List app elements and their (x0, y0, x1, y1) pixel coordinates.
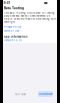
staticText: Not Now (15, 93, 26, 96)
staticText: Version 1.0 (1) (4, 39, 22, 42)
button[interactable]: Not Now (14, 92, 26, 96)
staticText: purposes and has not been reviewed by (4, 14, 50, 17)
button[interactable]: Continue (38, 91, 53, 97)
staticText: Continue (39, 92, 52, 96)
staticText: App Information (4, 35, 28, 38)
staticText: TestFlight. (4, 20, 16, 23)
staticText: Apple. Learn more about beta testing wit… (4, 17, 56, 20)
staticText: ▮▮▮ (44, 1, 47, 4)
staticText: Terms of Use (4, 29, 19, 32)
staticText: This app is being distributed for testin… (4, 11, 55, 14)
staticText: Beta Testing (4, 6, 24, 10)
staticText: Privacy Policy (4, 25, 21, 28)
staticText: 9:41 (3, 1, 9, 5)
